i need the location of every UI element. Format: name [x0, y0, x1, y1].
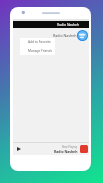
staticText: Radio Nasheh [54, 149, 78, 154]
button[interactable]: Radio Nasheh [17, 28, 88, 42]
staticText: Radio Nasheh [57, 22, 80, 27]
other: Open station [77, 30, 88, 41]
staticText: Manage Friends [28, 49, 53, 53]
other: Play [17, 147, 21, 151]
button[interactable]: Manage Friends [20, 46, 55, 55]
button[interactable]: Play [17, 143, 88, 155]
staticText: Radio Nasheh [53, 33, 77, 38]
button[interactable]: Add to Favorite [20, 38, 55, 46]
staticText: Add to Favorite [28, 40, 51, 44]
staticText: Now Playing [62, 145, 78, 149]
